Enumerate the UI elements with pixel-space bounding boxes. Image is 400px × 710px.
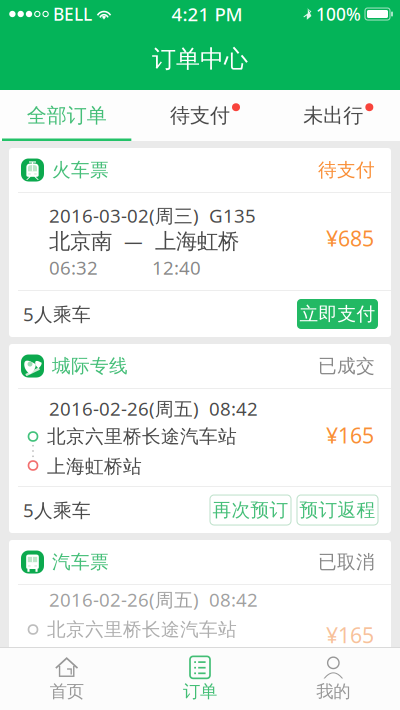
button[interactable]: 城际专线 bbox=[9, 344, 391, 533]
staticText: 火车票 bbox=[52, 158, 109, 181]
staticText: 未出行 bbox=[303, 103, 363, 128]
staticText: 汽车票 bbox=[52, 550, 109, 573]
staticText: 100% bbox=[316, 2, 361, 25]
staticText: 06:32 bbox=[49, 255, 98, 280]
staticText: 2016-02-26(周五) 08:42 bbox=[49, 587, 258, 612]
button[interactable]: 首页 bbox=[0, 648, 133, 710]
staticText: ¥165 bbox=[326, 421, 374, 449]
button[interactable]: 未出行 bbox=[267, 90, 400, 141]
staticText: 5人乘车 bbox=[23, 302, 91, 326]
staticText: ¥165 bbox=[326, 621, 374, 649]
button[interactable]: 立即支付 bbox=[297, 299, 378, 329]
staticText: 12:40 bbox=[152, 255, 201, 280]
button[interactable]: 预订返程 bbox=[297, 495, 378, 525]
staticText: 4:21 PM bbox=[171, 2, 242, 26]
staticText: 再次预订 bbox=[212, 498, 288, 521]
staticText: 北京南 bbox=[49, 228, 112, 255]
button[interactable]: 再次预订 bbox=[210, 495, 291, 525]
staticText: 待支付 bbox=[170, 103, 230, 128]
staticText: 待支付 bbox=[318, 158, 375, 181]
staticText: 上海虹桥站 bbox=[47, 455, 142, 478]
button[interactable]: 待支付 bbox=[133, 90, 267, 141]
button[interactable]: 我的 bbox=[267, 648, 400, 710]
staticText: 订单中心 bbox=[152, 44, 248, 74]
staticText: 城际专线 bbox=[52, 354, 128, 377]
staticText: 5人乘车 bbox=[23, 498, 91, 522]
staticText: 首页 bbox=[50, 681, 84, 702]
staticText: 北京六里桥长途汽车站 bbox=[47, 425, 237, 448]
staticText: 2016-02-26(周五) 08:42 bbox=[49, 396, 258, 421]
staticText: 订单 bbox=[183, 681, 217, 702]
staticText: 预订返程 bbox=[299, 498, 375, 521]
button[interactable]: 火车票 bbox=[9, 148, 391, 337]
staticText: 已成交 bbox=[318, 354, 375, 377]
staticText: 我的 bbox=[316, 681, 350, 702]
staticText: 已取消 bbox=[318, 550, 375, 573]
staticText: ¥685 bbox=[326, 224, 374, 252]
staticText: BELL bbox=[53, 2, 92, 25]
staticText: 全部订单 bbox=[27, 103, 107, 128]
staticText: 2016-03-02(周三) G135 bbox=[49, 203, 256, 228]
staticText: — bbox=[124, 229, 143, 254]
button[interactable]: 订单 bbox=[133, 648, 267, 710]
staticText: 上海虹桥 bbox=[155, 228, 239, 255]
button[interactable]: 全部订单 bbox=[0, 90, 133, 141]
staticText: 北京六里桥长途汽车站 bbox=[47, 618, 237, 641]
staticText: 立即支付 bbox=[299, 302, 375, 325]
button[interactable]: 汽车票 bbox=[9, 540, 391, 651]
